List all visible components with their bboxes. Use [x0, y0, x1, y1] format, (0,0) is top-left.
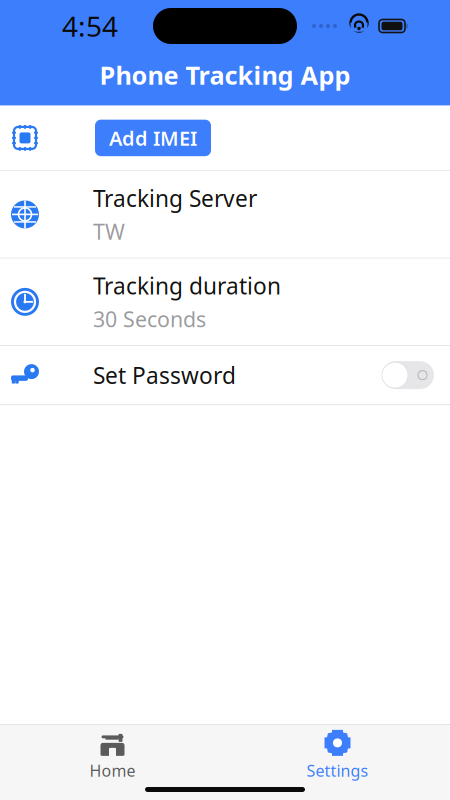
staticText: TW — [93, 217, 125, 246]
staticText: 4:54 — [62, 7, 118, 45]
button[interactable]: Settings — [225, 723, 450, 781]
staticText: 30 Seconds — [93, 305, 206, 333]
staticText: Tracking Server — [93, 183, 257, 213]
button[interactable]: Add IMEI — [95, 120, 211, 156]
staticText: Tracking duration — [93, 271, 281, 301]
button[interactable]: Set Password — [0, 346, 450, 405]
staticText: Home — [89, 760, 135, 781]
staticText: Add IMEI — [109, 125, 197, 151]
button[interactable]: Tracking Server — [0, 171, 450, 259]
staticText: Settings — [306, 760, 368, 781]
staticText: Phone Tracking App — [99, 58, 350, 92]
button[interactable]: Home — [0, 723, 225, 781]
button[interactable]: Tracking duration — [0, 259, 450, 346]
staticText: Set Password — [93, 360, 236, 390]
